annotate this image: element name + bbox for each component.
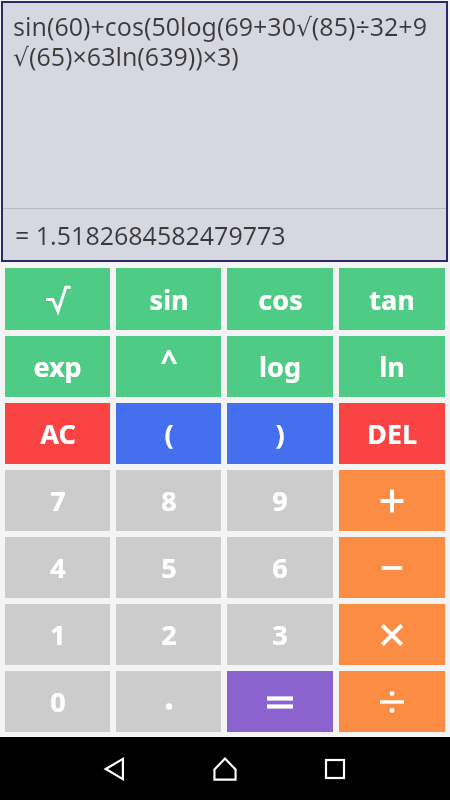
staticText: 6 [272, 549, 288, 586]
button[interactable]: ln [339, 336, 445, 397]
button[interactable]: tan [339, 268, 445, 330]
button[interactable]: Multiply [339, 604, 445, 665]
staticText: sin [149, 281, 189, 318]
staticText: 1 [50, 616, 66, 653]
button[interactable]: Decimal point [116, 671, 221, 732]
staticText: 5 [161, 549, 177, 586]
button[interactable]: Recent apps [280, 737, 390, 800]
staticText: 9 [272, 482, 288, 519]
button[interactable]: 3 [227, 604, 333, 665]
staticText: 0 [50, 683, 66, 720]
button[interactable]: ) [227, 403, 333, 464]
button[interactable]: 6 [227, 537, 333, 598]
button[interactable]: Divide [339, 671, 445, 732]
staticText: 8 [161, 482, 177, 519]
button[interactable]: 9 [227, 470, 333, 531]
staticText: ( [164, 415, 174, 452]
button[interactable]: cos [227, 268, 333, 330]
staticText: log [259, 348, 301, 385]
button[interactable]: Equals [227, 671, 333, 732]
staticText: cos [258, 281, 303, 318]
staticText: AC [40, 415, 76, 452]
button[interactable]: 7 [5, 470, 110, 531]
button[interactable]: 5 [116, 537, 221, 598]
staticText: ln [379, 348, 405, 385]
button[interactable]: log [227, 336, 333, 397]
button[interactable]: exp [5, 336, 110, 397]
staticText: sin(60)+cos(50log(69+30√(85)÷32+9√(65)×6… [13, 9, 442, 73]
button[interactable]: 1 [5, 604, 110, 665]
staticText: 4 [50, 549, 66, 586]
staticText: 7 [50, 482, 66, 519]
staticText: 2 [161, 616, 177, 653]
button[interactable]: Minus [339, 537, 445, 598]
button[interactable]: 8 [116, 470, 221, 531]
staticText: ^ [160, 340, 178, 381]
button[interactable]: Power [116, 336, 221, 397]
button[interactable]: Plus [339, 470, 445, 531]
button[interactable]: 4 [5, 537, 110, 598]
staticText: 3 [272, 616, 288, 653]
button[interactable]: AC [5, 403, 110, 464]
staticText: = 1.5182684582479773 [15, 218, 286, 252]
staticText: ) [275, 415, 285, 452]
button[interactable]: 2 [116, 604, 221, 665]
staticText: tan [369, 281, 415, 318]
button[interactable]: sin [116, 268, 221, 330]
button[interactable]: ( [116, 403, 221, 464]
button[interactable]: Back [60, 737, 170, 800]
button[interactable]: DEL [339, 403, 445, 464]
button[interactable]: 0 [5, 671, 110, 732]
button[interactable]: Home [170, 737, 280, 800]
staticText: exp [33, 348, 82, 385]
staticText: DEL [367, 415, 417, 452]
button[interactable]: Square root [5, 268, 110, 330]
